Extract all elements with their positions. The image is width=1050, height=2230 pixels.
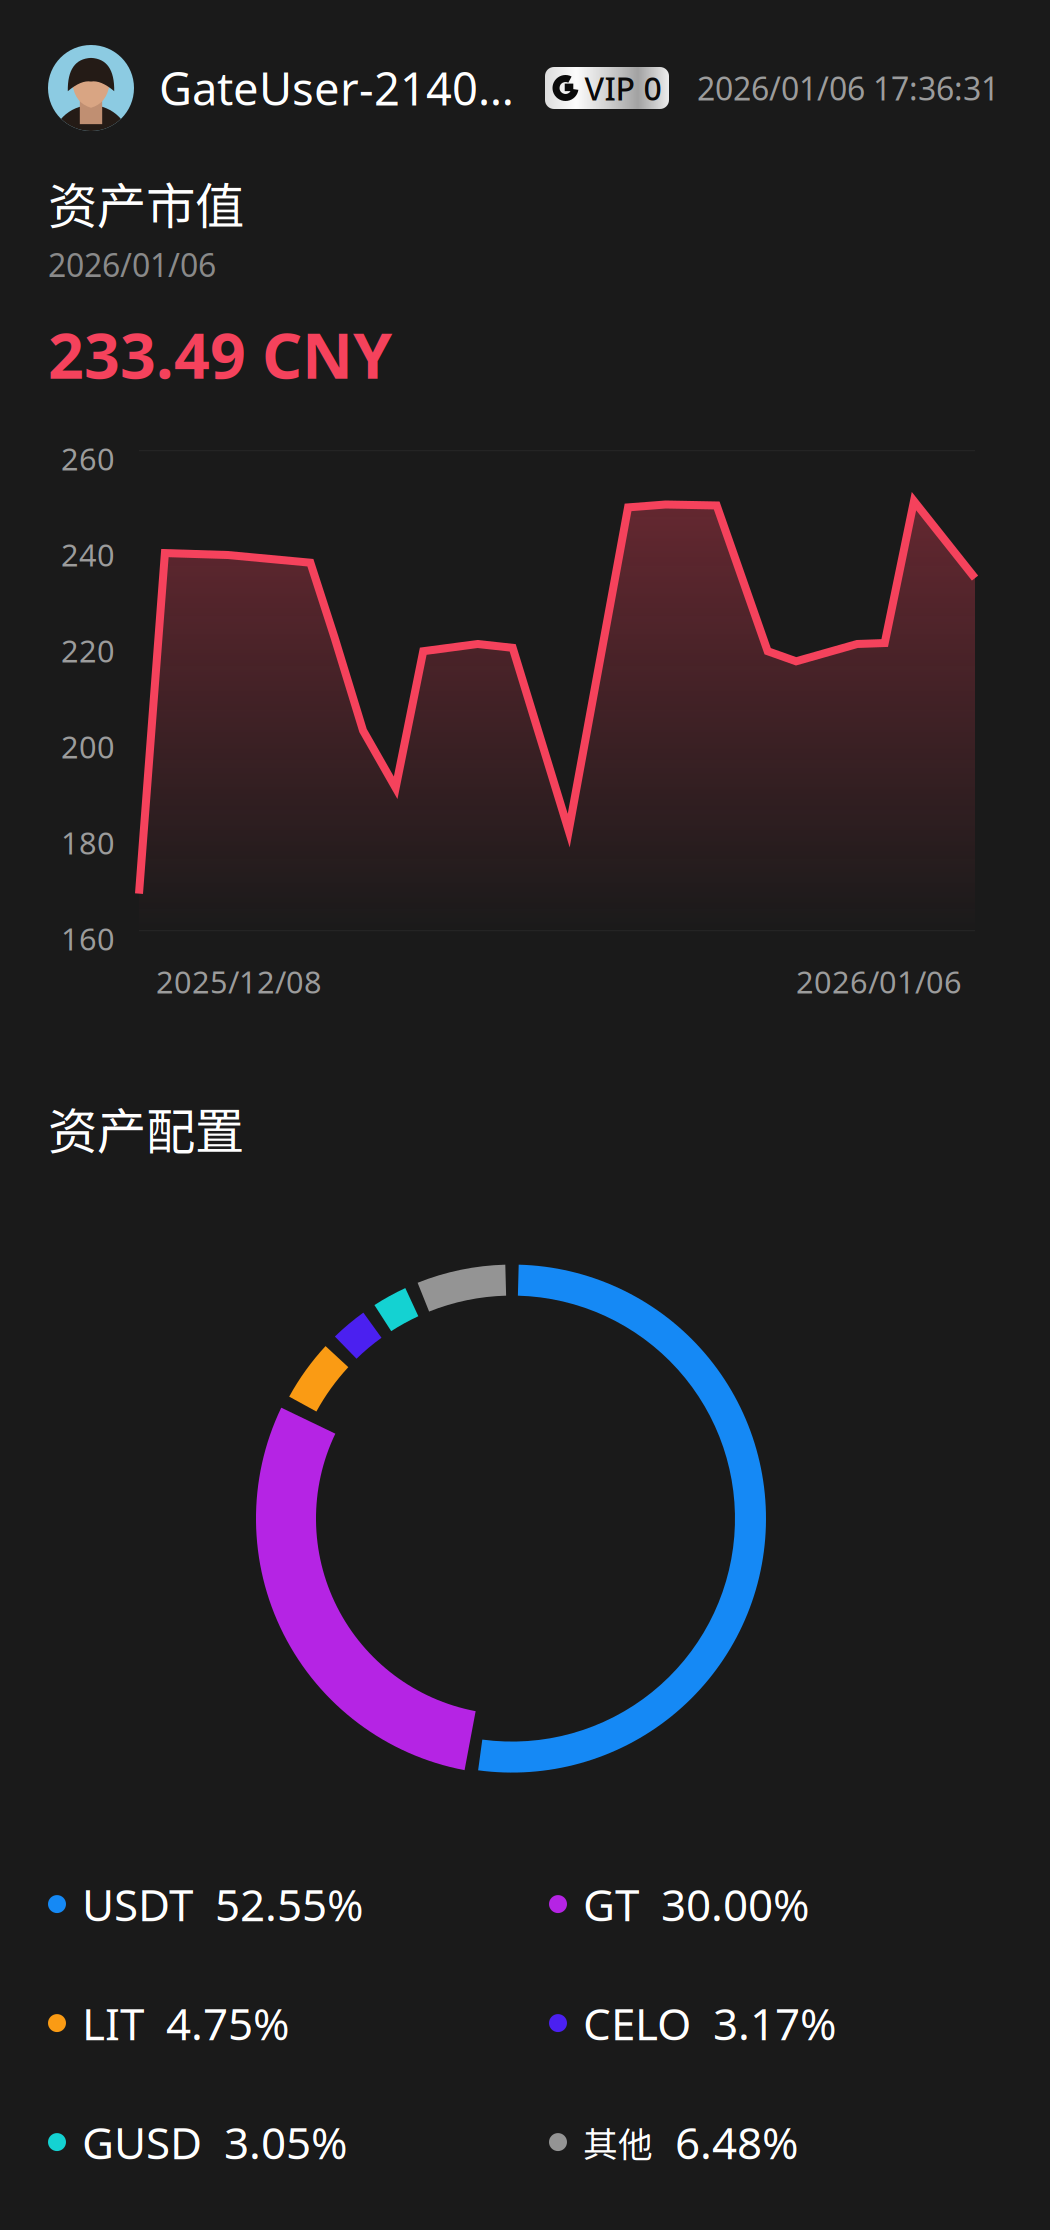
staticText: 240 xyxy=(61,534,115,575)
staticText: 资产配置 xyxy=(48,1092,244,1163)
staticText: 2026/01/06 17:36:31 xyxy=(697,67,999,109)
staticText: 220 xyxy=(61,630,115,671)
staticText: USDT xyxy=(82,1875,193,1933)
staticText: LIT xyxy=(82,1994,144,2052)
staticText: 180 xyxy=(61,822,115,863)
staticText: 260 xyxy=(61,438,115,479)
staticText: 52.55% xyxy=(215,1875,364,1933)
staticText: 资产市值 xyxy=(48,167,244,238)
staticText: 2026/01/06 xyxy=(796,961,962,1002)
staticText: 3.05% xyxy=(224,2113,348,2171)
staticText: CELO xyxy=(583,1994,691,2052)
staticText: GT xyxy=(583,1875,639,1933)
staticText: 30.00% xyxy=(661,1875,810,1933)
staticText: 其他 xyxy=(583,2117,653,2167)
staticText: 160 xyxy=(61,918,115,959)
staticText: 2025/12/08 xyxy=(156,961,322,1002)
staticText: 6.48% xyxy=(675,2113,799,2171)
staticText: 200 xyxy=(61,726,115,767)
staticText: 233.49 CNY xyxy=(48,313,392,396)
staticText: 2026/01/06 xyxy=(48,243,216,286)
staticText: 3.17% xyxy=(713,1994,837,2052)
staticText: GUSD xyxy=(82,2113,202,2171)
staticText: GateUser-2140… xyxy=(159,58,514,118)
staticText: 4.75% xyxy=(166,1994,290,2052)
button[interactable]: Account GateUser-2140 xyxy=(48,45,514,131)
staticText: VIP 0 xyxy=(584,67,661,109)
